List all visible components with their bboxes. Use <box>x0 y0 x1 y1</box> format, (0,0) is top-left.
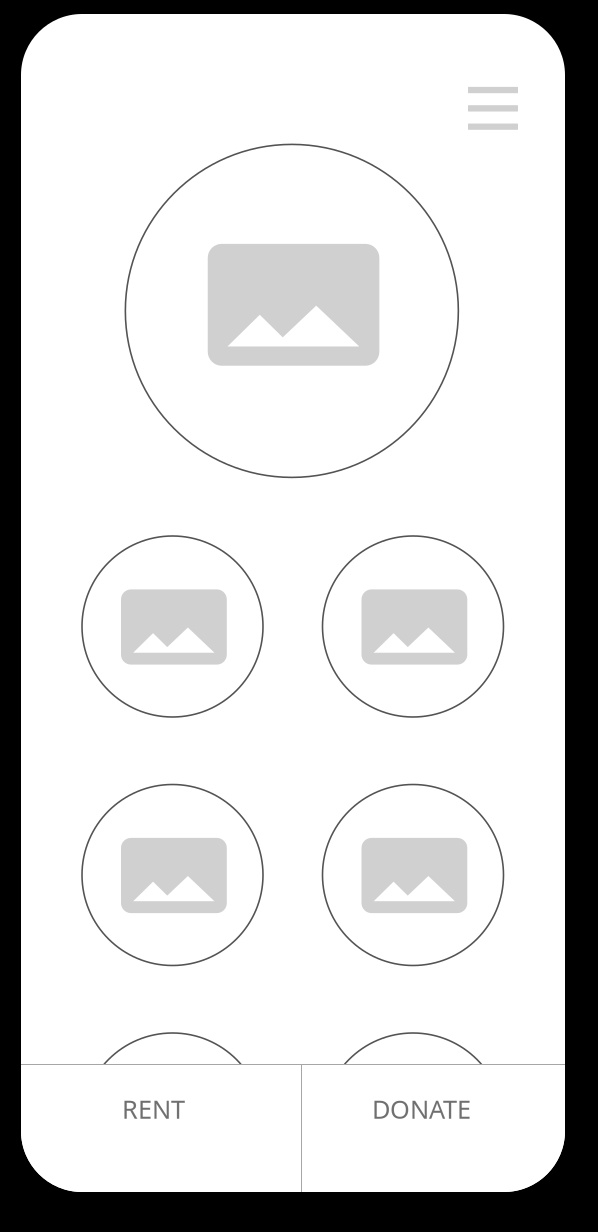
button[interactable]: Photo <box>322 536 503 717</box>
button[interactable]: Menu <box>458 77 528 140</box>
button[interactable]: Photo <box>322 784 503 965</box>
button[interactable]: Photo <box>82 536 263 717</box>
button[interactable]: Photo <box>322 1033 503 1214</box>
button[interactable]: DONATE <box>302 1065 565 1192</box>
staticText: DONATE <box>372 1092 471 1126</box>
button[interactable]: Photo <box>82 784 263 965</box>
button[interactable]: Photo <box>125 144 458 477</box>
staticText: RENT <box>122 1092 185 1126</box>
button[interactable]: Photo <box>82 1033 263 1214</box>
button[interactable]: RENT <box>21 1065 301 1192</box>
